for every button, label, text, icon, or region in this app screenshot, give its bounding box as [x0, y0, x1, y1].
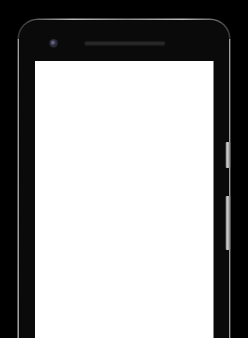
button[interactable]: Phone device preview with blank screen: [0, 0, 248, 338]
